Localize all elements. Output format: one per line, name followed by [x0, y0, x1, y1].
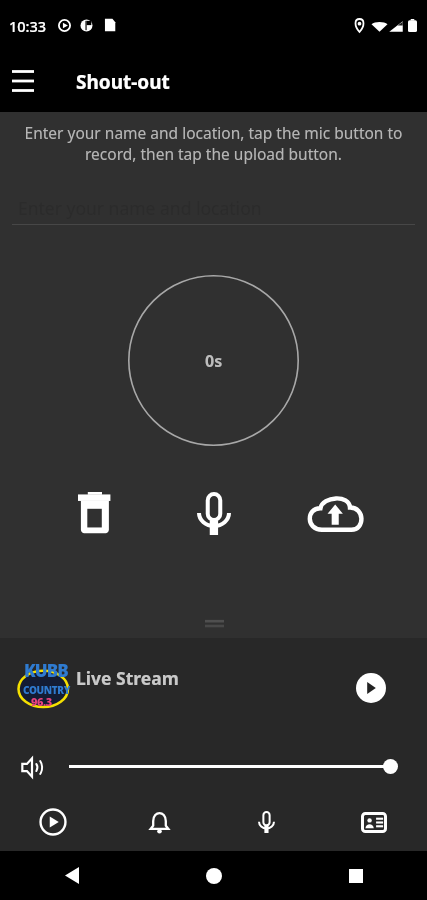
staticText: Shout-out — [76, 69, 170, 95]
button[interactable]: Delete recording — [62, 481, 126, 545]
button[interactable]: Record — [182, 481, 246, 545]
button[interactable]: Home — [143, 851, 285, 900]
staticText: Live Stream — [76, 666, 179, 690]
staticText: KUBB — [24, 659, 68, 682]
button[interactable] — [0, 638, 427, 722]
button[interactable]: Shout-out — [213, 793, 320, 851]
button[interactable]: Upload — [301, 481, 369, 545]
button[interactable]: Contact — [320, 793, 427, 851]
staticText: 0s — [205, 350, 223, 372]
button[interactable]: Back — [0, 851, 143, 900]
staticText: 96.3 — [31, 694, 52, 709]
staticText: 10:33 — [9, 16, 47, 36]
button[interactable]: Play live stream — [356, 673, 386, 703]
button[interactable]: Alerts — [106, 793, 213, 851]
button[interactable]: Recent apps — [285, 851, 427, 900]
staticText: COUNTRY — [23, 683, 71, 697]
button[interactable]: Open navigation menu — [0, 50, 46, 112]
button[interactable]: Listen live — [0, 793, 106, 851]
staticText: Enter your name and location, tap the mi… — [8, 122, 419, 165]
